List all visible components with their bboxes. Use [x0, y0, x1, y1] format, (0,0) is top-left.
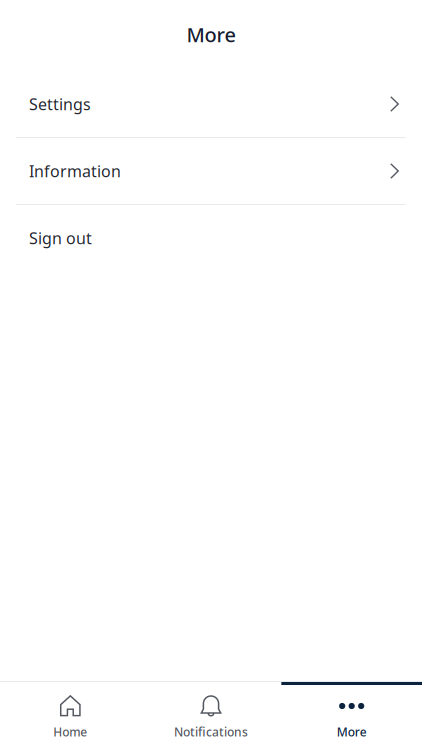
staticText: Sign out: [29, 227, 92, 249]
button[interactable]: More: [281, 681, 422, 750]
button[interactable]: Sign out: [0, 205, 422, 271]
button[interactable]: Notifications: [141, 681, 281, 750]
staticText: Settings: [29, 93, 91, 115]
staticText: More: [186, 21, 235, 48]
staticText: Home: [53, 724, 87, 740]
button[interactable]: Settings: [0, 71, 422, 137]
staticText: More: [337, 724, 367, 740]
button[interactable]: Information: [0, 138, 422, 204]
button[interactable]: Home: [0, 681, 141, 750]
staticText: Notifications: [174, 724, 248, 740]
staticText: Information: [29, 160, 121, 182]
